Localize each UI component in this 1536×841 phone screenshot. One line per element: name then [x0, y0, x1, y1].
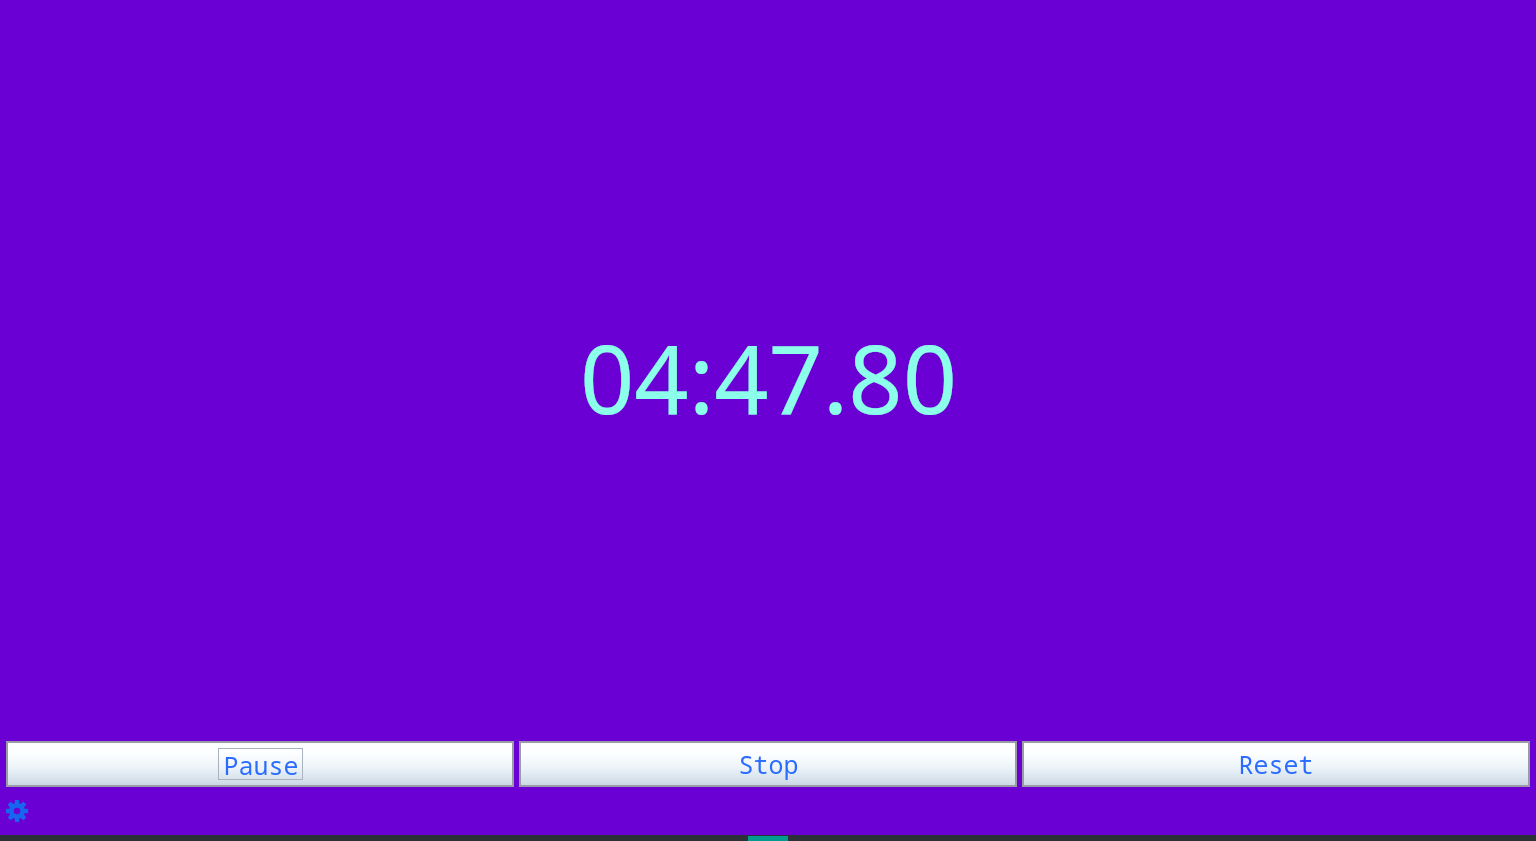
staticText: Stop: [738, 747, 799, 781]
button[interactable]: Settings: [5, 799, 29, 823]
staticText: Reset: [1238, 747, 1314, 781]
button[interactable]: Stop: [519, 741, 1017, 787]
button[interactable]: Pause: [6, 741, 514, 787]
button[interactable]: Reset: [1022, 741, 1530, 787]
staticText: 04:47.80: [580, 312, 957, 441]
staticText: Pause: [223, 748, 299, 780]
